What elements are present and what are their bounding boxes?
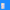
button[interactable] (1, 4, 4, 5)
button[interactable] (1, 7, 4, 8)
button[interactable] (1, 8, 4, 9)
button[interactable] (1, 6, 4, 7)
button[interactable] (1, 3, 4, 4)
button[interactable] (1, 5, 4, 6)
